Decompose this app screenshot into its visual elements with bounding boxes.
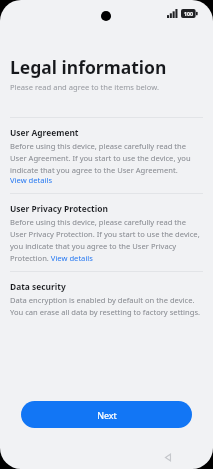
button[interactable]: User Privacy Protection — [0, 194, 213, 271]
button[interactable]: Back — [160, 449, 177, 466]
button[interactable]: View details — [10, 175, 53, 185]
staticText: Before using this device, please careful… — [10, 141, 203, 175]
button[interactable]: Data security — [0, 272, 213, 325]
staticText: Before using this device, please careful… — [10, 217, 203, 263]
button[interactable]: User Agreement — [0, 118, 213, 193]
staticText: Next — [97, 409, 117, 421]
staticText: View details — [10, 175, 53, 185]
staticText: Legal information — [10, 55, 167, 79]
staticText: Data encryption is enabled by default on… — [10, 295, 203, 317]
staticText: User Privacy Protection — [10, 203, 108, 214]
staticText: Please read and agree to the items below… — [10, 82, 159, 92]
staticText: User Agreement — [10, 127, 79, 138]
staticText: Data security — [10, 281, 66, 292]
button[interactable]: Next — [21, 401, 192, 428]
staticText: 100 — [184, 10, 193, 17]
